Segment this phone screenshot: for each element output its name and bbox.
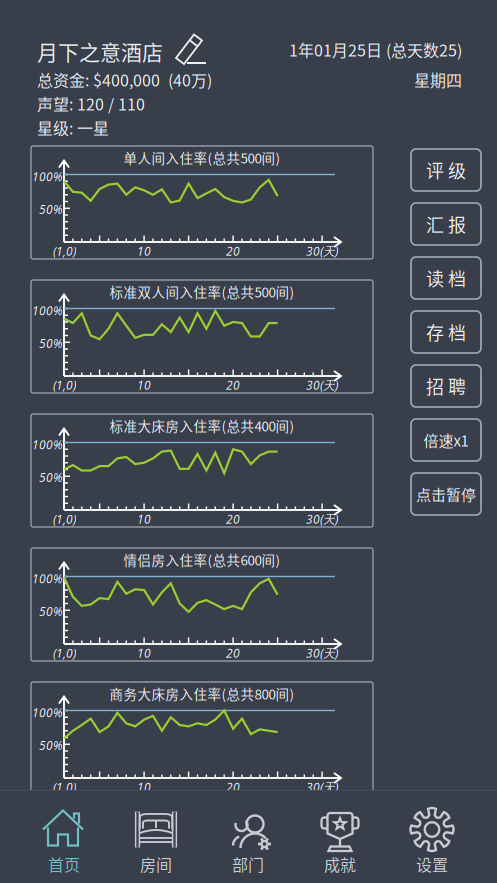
staticText: 50%	[39, 469, 63, 485]
staticText: 20	[226, 645, 240, 661]
staticText: 首页	[48, 852, 80, 876]
staticText: 20	[226, 243, 240, 259]
staticText: 10	[137, 377, 151, 393]
staticText: 月下之意酒店	[37, 36, 163, 66]
staticText: 读 档	[426, 265, 466, 291]
staticText: 标准双人间入住率(总共500间)	[109, 282, 294, 301]
button[interactable]: 存 档	[411, 311, 481, 353]
staticText: (1,0)	[53, 511, 76, 527]
button[interactable]: 读 档	[411, 257, 481, 299]
staticText: 50%	[39, 201, 63, 217]
button[interactable]: 招 聘	[411, 365, 481, 407]
button[interactable]: 评 级	[411, 149, 481, 191]
staticText: 100%	[32, 570, 63, 587]
staticText: 100%	[32, 436, 63, 453]
button[interactable]: 房间	[110, 797, 202, 883]
button[interactable]: 成就	[294, 797, 386, 883]
staticText: 20	[226, 511, 240, 527]
button[interactable]: 倍速x1	[411, 419, 481, 461]
staticText: 房间	[140, 852, 172, 876]
staticText: 设置	[416, 852, 448, 876]
staticText: (1,0)	[53, 243, 76, 259]
staticText: 星期四	[414, 68, 462, 91]
staticText: 单人间入住率(总共500间)	[123, 148, 280, 167]
staticText: 声望: 120 / 110	[37, 92, 145, 115]
staticText: 30(天)	[306, 645, 338, 661]
staticText: 评 级	[426, 157, 466, 183]
staticText: 20	[226, 377, 240, 393]
staticText: 100%	[32, 168, 63, 185]
button[interactable]: 首页	[18, 797, 110, 883]
staticText: (1,0)	[53, 645, 76, 661]
staticText: 30(天)	[306, 377, 338, 393]
staticText: 10	[137, 645, 151, 661]
staticText: 50%	[39, 335, 63, 351]
staticText: 部门	[232, 852, 264, 876]
staticText: 点击暂停	[416, 483, 476, 505]
staticText: 10	[137, 243, 151, 259]
button[interactable]: 部门	[202, 797, 294, 883]
staticText: 标准大床房入住率(总共400间)	[109, 416, 294, 435]
staticText: 倍速x1	[423, 429, 468, 451]
staticText: 汇 报	[426, 211, 466, 237]
staticText: 100%	[32, 704, 63, 721]
staticText: 商务大床房入住率(总共800间)	[109, 684, 294, 703]
staticText: 30(天)	[306, 779, 338, 795]
staticText: 1年01月25日 (总天数25)	[289, 38, 462, 61]
staticText: 10	[137, 779, 151, 795]
staticText: 100%	[32, 302, 63, 319]
staticText: 情侣房入住率(总共600间)	[123, 550, 280, 569]
staticText: 20	[226, 779, 240, 795]
staticText: 总资金: $400,000 (40万)	[37, 68, 212, 91]
staticText: 50%	[39, 737, 63, 753]
staticText: 50%	[39, 603, 63, 619]
staticText: 星级: 一星	[37, 116, 109, 139]
staticText: 存 档	[426, 319, 466, 345]
button[interactable]: 点击暂停	[411, 473, 481, 515]
staticText: 10	[137, 511, 151, 527]
staticText: 30(天)	[306, 243, 338, 259]
staticText: 招 聘	[426, 373, 466, 399]
staticText: (1,0)	[53, 779, 76, 795]
staticText: 30(天)	[306, 511, 338, 527]
staticText: 成就	[324, 852, 356, 876]
button[interactable]: 汇 报	[411, 203, 481, 245]
button[interactable]: 重命名酒店	[173, 31, 211, 67]
button[interactable]: 设置	[386, 797, 478, 883]
staticText: (1,0)	[53, 377, 76, 393]
